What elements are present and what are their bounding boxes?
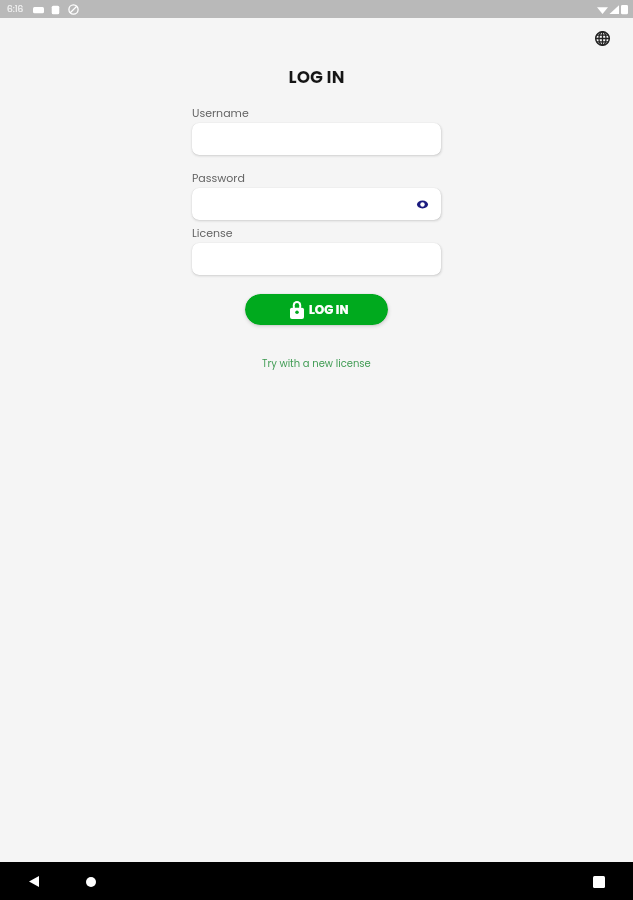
button[interactable]: Change language bbox=[589, 25, 615, 51]
button[interactable]: Show password bbox=[412, 194, 432, 214]
staticText: Password bbox=[192, 170, 245, 185]
button[interactable]: Back bbox=[21, 869, 46, 894]
staticText: 6:16 bbox=[7, 3, 24, 16]
button[interactable]: Show password bbox=[192, 188, 441, 220]
staticText: License bbox=[192, 225, 233, 240]
button[interactable]: Home bbox=[78, 869, 103, 894]
button[interactable]: Recent apps bbox=[586, 869, 611, 894]
staticText: LOG IN bbox=[309, 301, 349, 318]
staticText: LOG IN bbox=[0, 65, 633, 89]
button[interactable]: LOG IN bbox=[245, 294, 388, 325]
staticText: Username bbox=[192, 105, 249, 120]
button[interactable]: Try with a new license bbox=[262, 356, 371, 370]
